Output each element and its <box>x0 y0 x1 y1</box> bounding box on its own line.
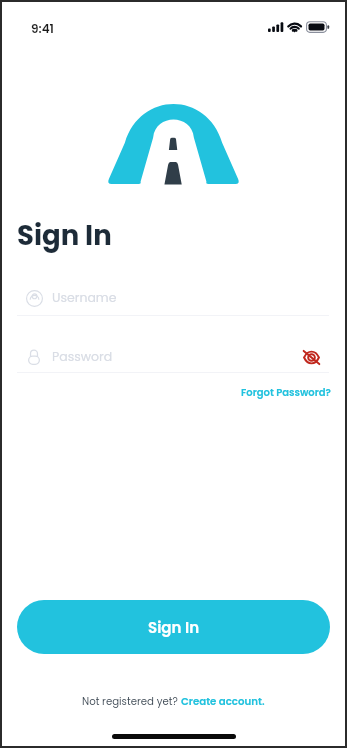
button[interactable]: Show password <box>299 345 323 369</box>
staticText: 9:41 <box>31 20 54 37</box>
staticText: Not registered yet? <box>82 694 181 708</box>
button[interactable]: Sign In <box>17 600 330 654</box>
button[interactable]: Create account. <box>181 694 265 708</box>
button[interactable]: Forgot Password? <box>241 383 331 401</box>
staticText: Password <box>52 348 113 365</box>
staticText: Sign In <box>148 617 200 638</box>
button[interactable]: Password <box>17 343 330 371</box>
staticText: Username <box>52 289 117 306</box>
staticText: Sign In <box>17 216 112 254</box>
button[interactable]: Username <box>17 284 330 312</box>
